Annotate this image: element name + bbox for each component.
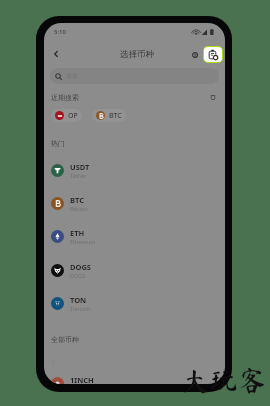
staticText: DOGS: [70, 262, 91, 272]
button[interactable]: USDT: [44, 154, 225, 187]
button[interactable]: Help: [189, 49, 200, 60]
staticText: Toncoin: [70, 305, 91, 312]
button[interactable]: OP: [51, 109, 82, 122]
staticText: 5:10: [54, 28, 66, 36]
staticText: 1INCH: [70, 375, 94, 384]
button[interactable]: Back: [49, 47, 63, 61]
staticText: 全部币种: [51, 335, 79, 344]
button[interactable]: Transaction records: [204, 47, 222, 62]
staticText: TON: [70, 295, 87, 305]
staticText: 大玩客: [181, 366, 267, 394]
staticText: Bitcoin: [70, 205, 88, 212]
staticText: 搜索: [66, 72, 78, 80]
staticText: 热门: [51, 139, 65, 148]
staticText: USDT: [70, 162, 90, 172]
staticText: 近期搜索: [51, 93, 79, 102]
button[interactable]: 搜索: [50, 68, 219, 84]
staticText: DOGS: [70, 272, 86, 279]
button[interactable]: 1INCH: [44, 367, 225, 384]
staticText: Tether: [70, 172, 87, 179]
staticText: Ethereum: [70, 238, 96, 245]
button[interactable]: TON: [44, 287, 225, 320]
button[interactable]: DOGS: [44, 254, 225, 287]
staticText: ETH: [70, 228, 85, 238]
staticText: OP: [68, 111, 78, 121]
button[interactable]: ETH: [44, 220, 225, 253]
button[interactable]: BTC: [44, 187, 225, 220]
staticText: 选择币种: [120, 49, 154, 60]
button[interactable]: BTC: [92, 109, 126, 122]
staticText: BTC: [70, 195, 84, 205]
staticText: BTC: [109, 111, 122, 121]
button[interactable]: Clear recent searches: [208, 92, 218, 102]
